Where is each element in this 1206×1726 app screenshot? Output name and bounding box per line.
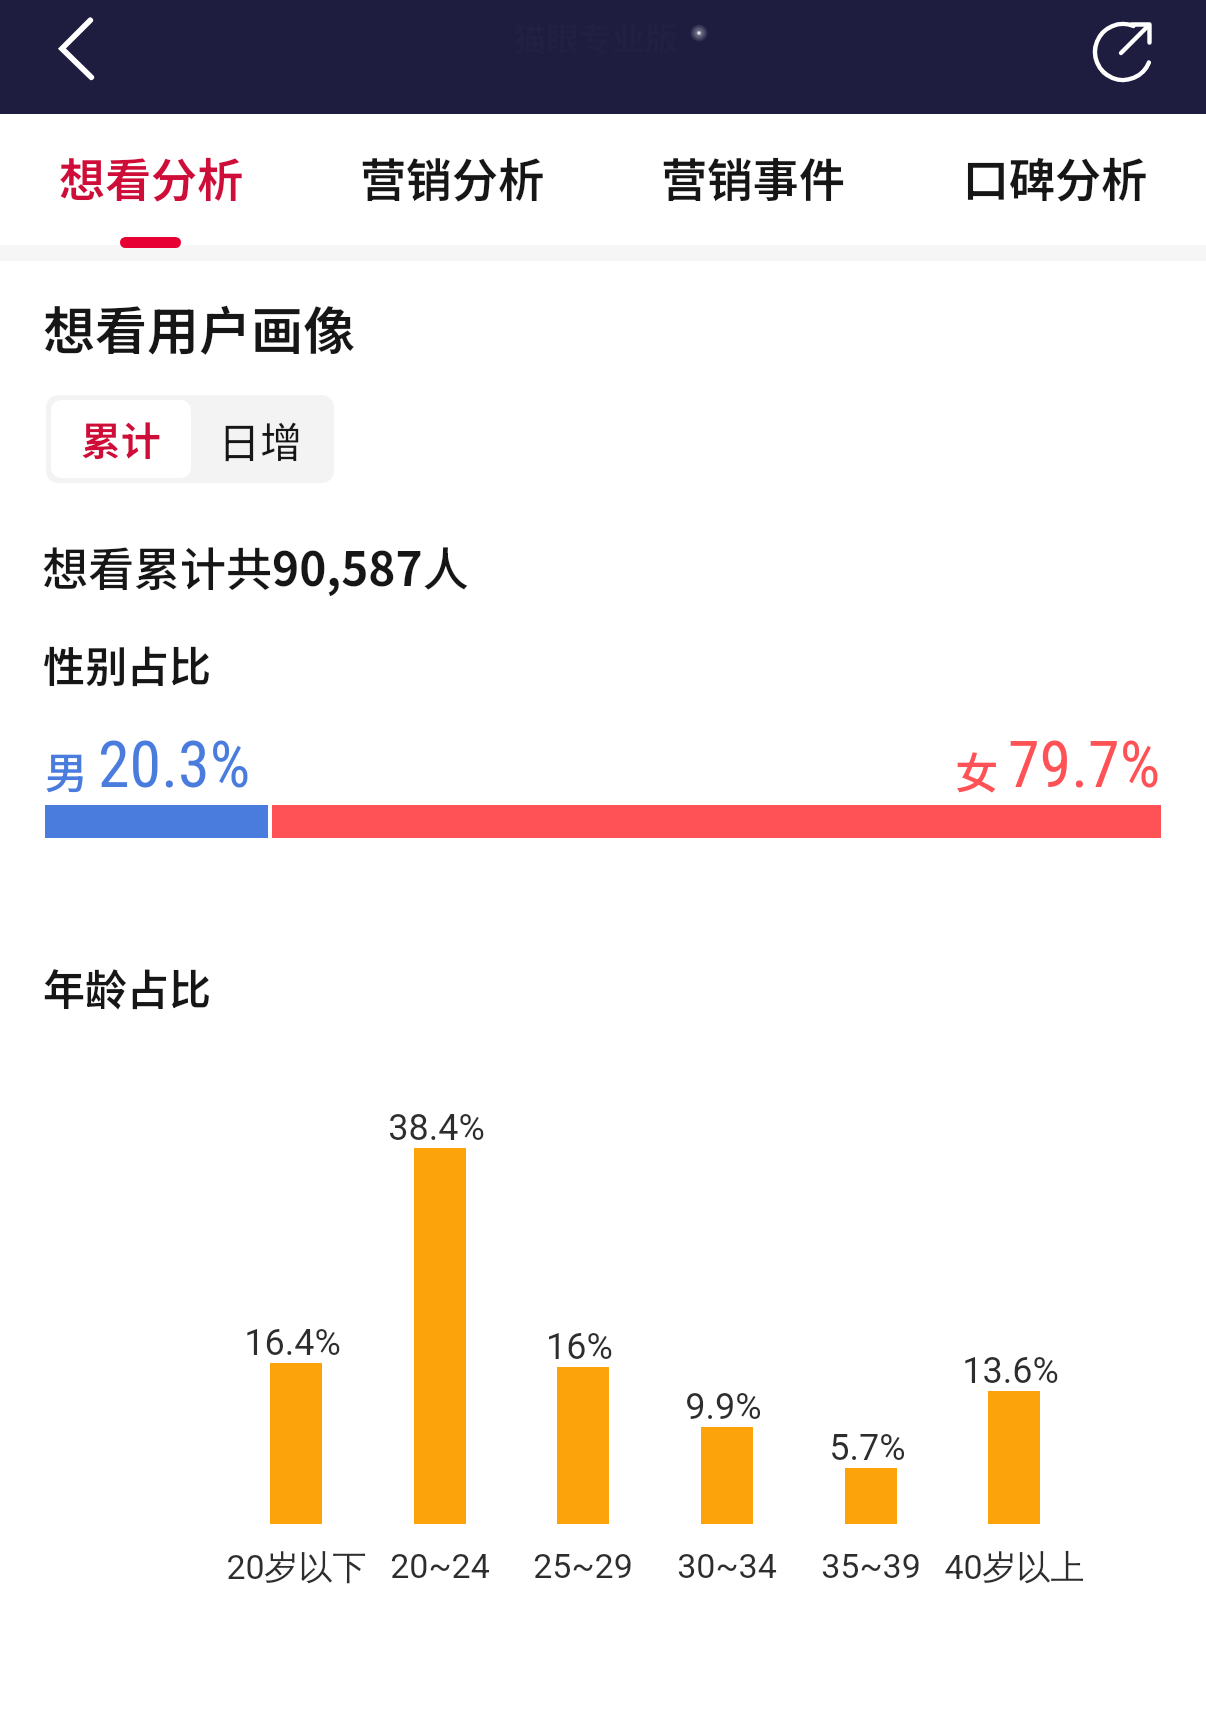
staticText: 40岁以上 [944, 1546, 1085, 1589]
staticText: 30~34 [677, 1546, 777, 1586]
button[interactable]: Back [20, 0, 134, 114]
staticText: 口碑分析 [963, 144, 1147, 211]
button[interactable]: 想看分析 [0, 114, 301, 245]
staticText: 35~39 [821, 1546, 921, 1586]
staticText: 年龄占比 [43, 956, 212, 1017]
staticText: 16.4% [244, 1322, 341, 1364]
button[interactable]: 营销事件 [602, 114, 904, 245]
staticText: 男 [45, 739, 98, 801]
staticText: 9.9% [685, 1386, 762, 1428]
button[interactable]: 营销分析 [301, 114, 602, 245]
staticText: 20.3% [98, 728, 251, 803]
staticText: 日增 [218, 409, 303, 470]
button[interactable]: 累计 [51, 400, 191, 478]
staticText: 想看分析 [59, 144, 243, 211]
staticText: 想看累计共90,587人 [42, 533, 469, 600]
staticText: 20~24 [390, 1546, 490, 1586]
button[interactable]: 日增 [191, 400, 329, 478]
staticText: 性别占比 [43, 633, 212, 694]
staticText: 营销分析 [360, 144, 544, 211]
staticText: 女 [955, 739, 1008, 801]
staticText: 25~29 [533, 1546, 633, 1586]
staticText: 20岁以下 [226, 1546, 367, 1589]
button[interactable]: Share [1092, 0, 1206, 114]
staticText: 累计 [81, 410, 161, 468]
staticText: 13.6% [962, 1350, 1059, 1392]
staticText: 38.4% [388, 1107, 485, 1149]
button[interactable]: 口碑分析 [904, 114, 1206, 245]
staticText: 想看用户画像 [43, 290, 356, 365]
staticText: 16% [546, 1326, 613, 1368]
staticText: 营销事件 [661, 144, 845, 211]
staticText: 5.7% [829, 1427, 906, 1469]
staticText: 79.7% [1008, 728, 1161, 803]
